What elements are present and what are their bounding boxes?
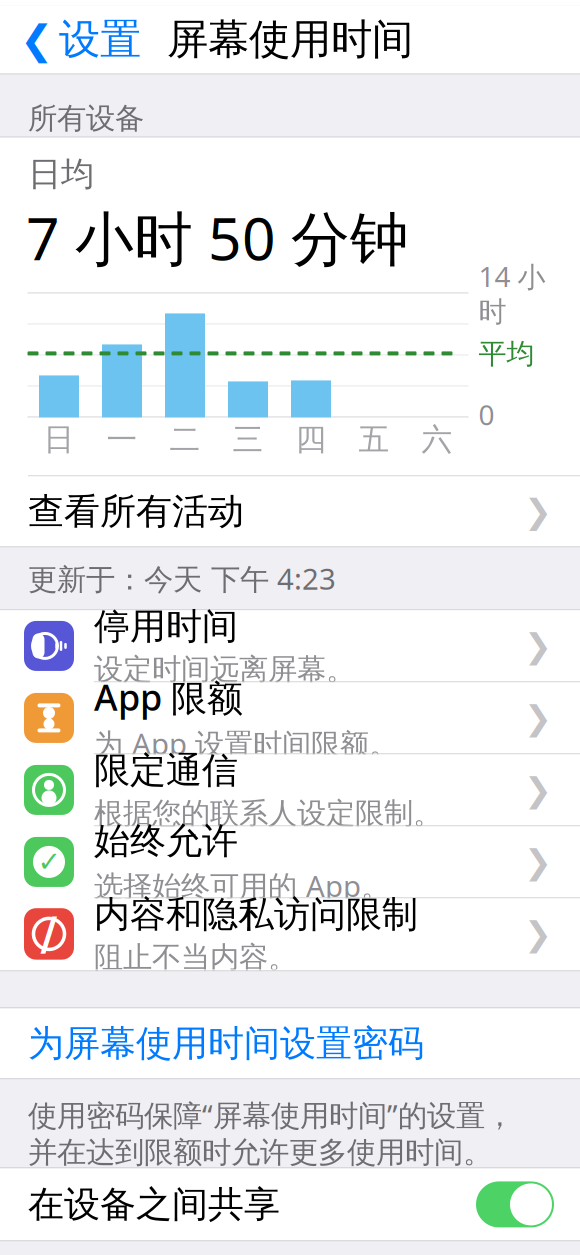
staticText: ❯ (524, 915, 552, 953)
staticText: 一 (106, 421, 137, 458)
button[interactable]: ✓ (0, 826, 580, 898)
button[interactable]: ❮ (0, 4, 141, 75)
button[interactable]: 查看所有活动 (0, 476, 580, 546)
staticText: 三 (232, 421, 263, 458)
staticText: 始终允许 (94, 819, 238, 863)
staticText: 查看所有活动 (28, 489, 244, 533)
staticText: ❮ (20, 17, 54, 62)
staticText: ∕ (40, 908, 57, 960)
button[interactable]: ∕ (0, 898, 580, 970)
staticText: 四 (295, 421, 326, 458)
button[interactable]: 为屏幕使用时间设置密码 (0, 1008, 580, 1078)
staticText: 为 App 设置时间限额。 (94, 724, 398, 763)
staticText: 阻止不当内容。 (94, 939, 297, 975)
staticText: ❯ (524, 627, 552, 665)
button[interactable]: 限定通信 (0, 754, 580, 826)
staticText: 设置 (59, 14, 141, 65)
staticText: 使用密码保障“屏幕使用时间”的设置，并在达到限额时允许更多使用时间。 (28, 1095, 514, 1170)
staticText: 在设备之间共享 (28, 1182, 280, 1226)
staticText: 更新于：今天 下午 4:23 (28, 559, 336, 598)
staticText: 所有设备 (28, 101, 144, 137)
staticText: ✓ (37, 846, 60, 878)
button[interactable]: 停用时间 (0, 610, 580, 682)
staticText: 平均 (478, 337, 534, 371)
staticText: ❯ (524, 843, 552, 881)
staticText: 0 (478, 396, 494, 433)
staticText: 选择始终可用的 App。 (94, 866, 390, 905)
button[interactable]: 在设备之间共享 (0, 1168, 580, 1240)
staticText: 日均 (28, 154, 94, 194)
staticText: 7 小时 50 分钟 (26, 198, 409, 276)
staticText: 屏幕使用时间 (167, 14, 413, 65)
staticText: 根据您的联系人设定限制。 (94, 795, 442, 831)
staticText: 设定时间远离屏幕。 (94, 651, 355, 687)
staticText: 日 (43, 421, 74, 458)
button[interactable]: App 限额 (0, 682, 580, 754)
staticText: 六 (421, 421, 452, 458)
staticText: 停用时间 (94, 604, 238, 648)
staticText: 内容和隐私访问限制 (94, 892, 418, 936)
staticText: 为屏幕使用时间设置密码 (28, 1021, 424, 1065)
staticText: App 限额 (94, 673, 243, 721)
staticText: 限定通信 (94, 748, 238, 792)
staticText: ❯ (524, 771, 552, 809)
staticText: 五 (358, 421, 389, 458)
staticText: 14 小时 (478, 258, 545, 329)
staticText: ❯ (524, 699, 552, 737)
staticText: 二 (169, 421, 200, 458)
staticText: ❯ (524, 492, 552, 530)
